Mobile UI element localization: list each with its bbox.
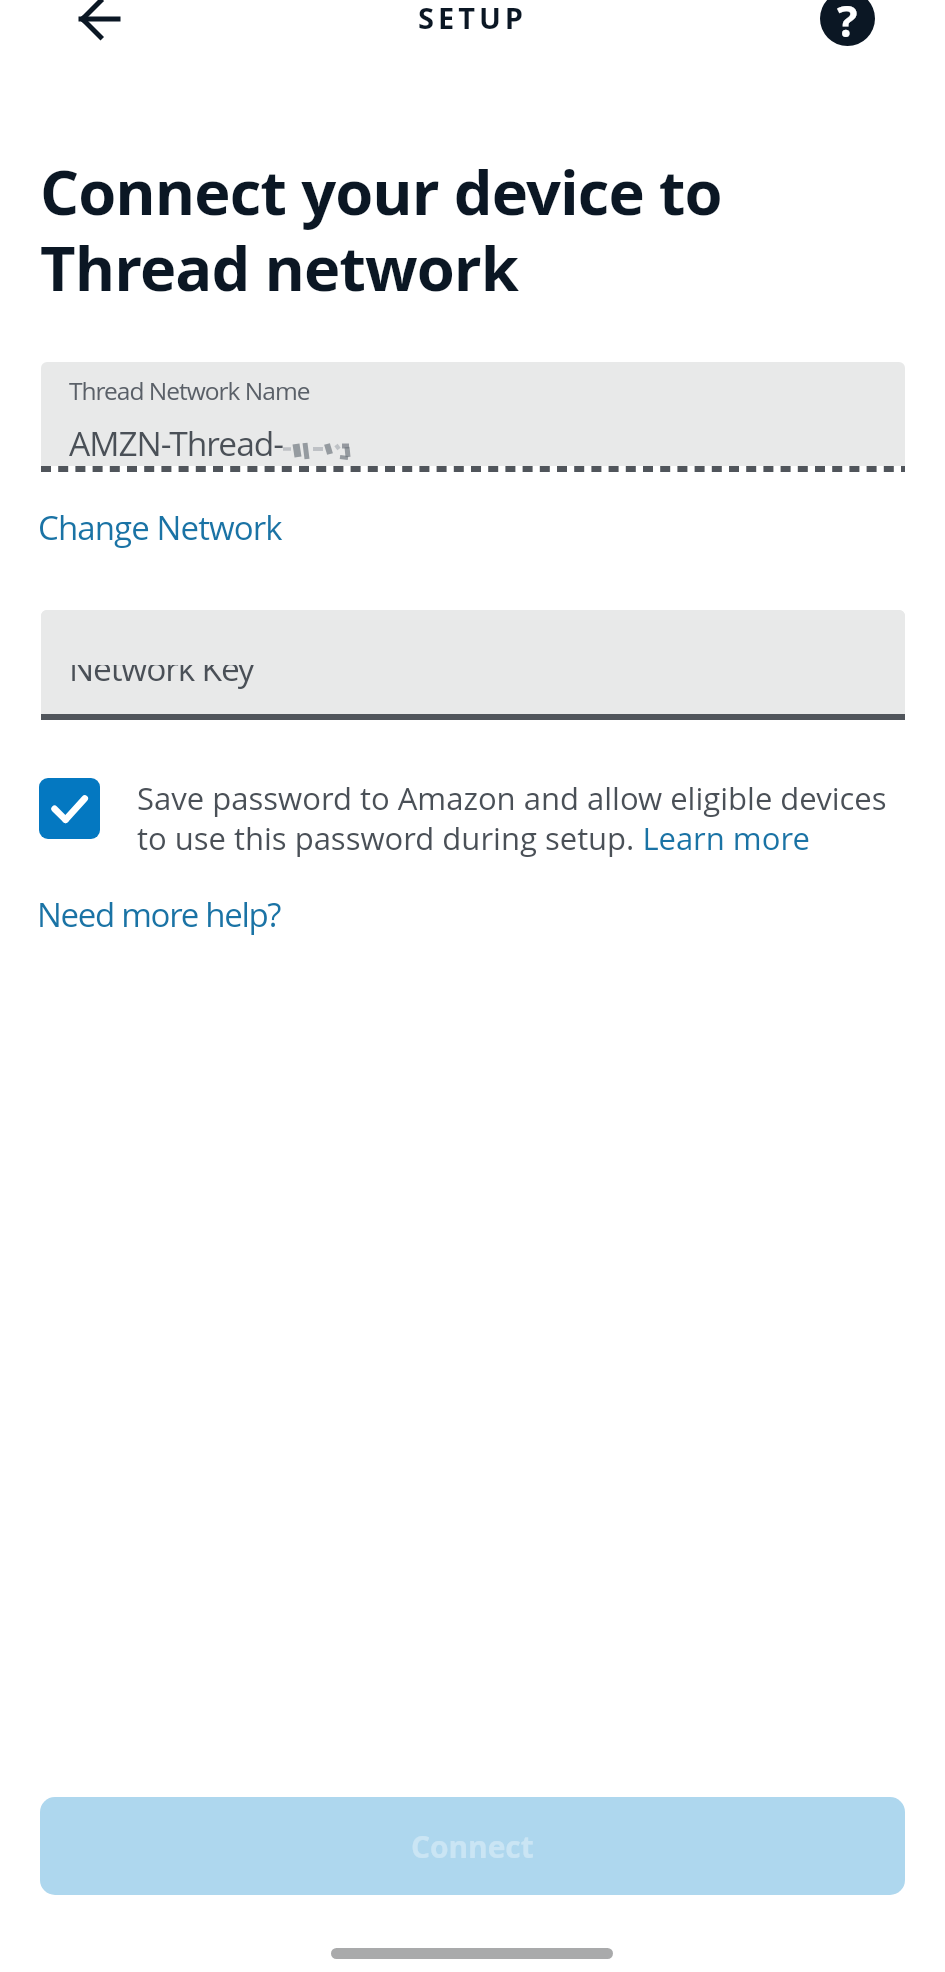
staticText: ? [837, 0, 858, 46]
button[interactable]: Change Network [37, 505, 283, 550]
button[interactable]: Save password to Amazon [39, 778, 100, 839]
button[interactable]: Thread Network Name [41, 362, 905, 466]
staticText: SETUP [0, 0, 945, 1970]
staticText: Connect [411, 1826, 534, 1867]
staticText: Save password to Amazon and allow eligib… [137, 777, 897, 859]
button[interactable]: Back [51, 0, 147, 67]
button[interactable]: Help [799, 0, 895, 66]
staticText: Change Network [38, 505, 282, 550]
button[interactable]: Connect [40, 1797, 905, 1895]
button[interactable]: Network Key [41, 610, 905, 714]
staticText: Need more help? [37, 892, 281, 937]
button[interactable]: Save password to Amazon and allow eligib… [137, 777, 897, 859]
staticText: AMZN-Thread- [69, 420, 284, 466]
staticText: Network Key [69, 645, 254, 691]
button[interactable]: Need more help? [36, 892, 282, 937]
staticText: Thread Network Name [69, 374, 310, 407]
staticText: Connect your device to Thread network [40, 149, 785, 309]
